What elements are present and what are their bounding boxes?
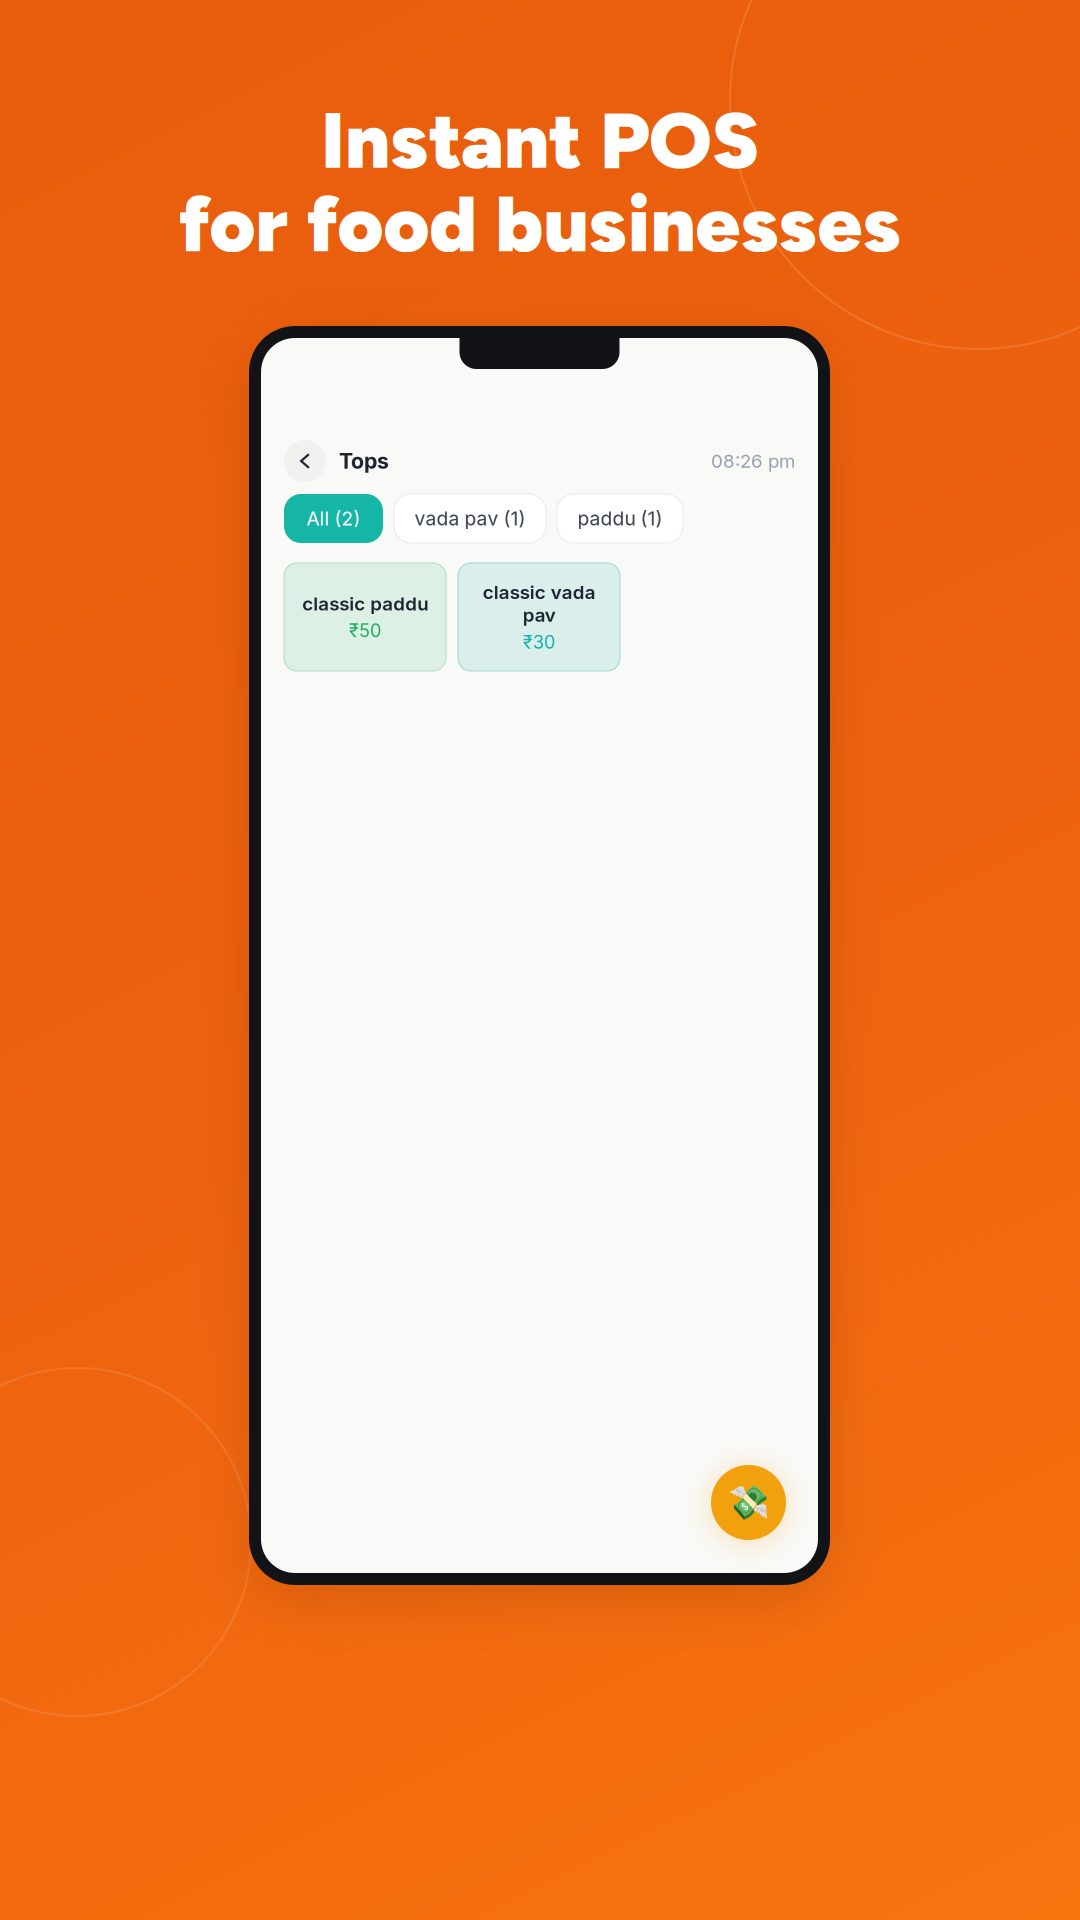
button[interactable]: Collect payment bbox=[711, 1465, 786, 1540]
staticText: Instant POS bbox=[321, 93, 759, 187]
staticText: ₹50 bbox=[349, 620, 381, 642]
staticText: for food businesses bbox=[178, 176, 901, 271]
staticText: paddu (1) bbox=[577, 507, 662, 530]
staticText: 💸 bbox=[727, 1483, 769, 1522]
staticText: classic vada pav bbox=[482, 581, 595, 626]
button[interactable]: All (2) bbox=[284, 494, 383, 543]
staticText: vada pav (1) bbox=[414, 507, 525, 530]
staticText: 08:26 pm bbox=[711, 450, 795, 472]
button[interactable]: vada pav (1) bbox=[394, 494, 546, 543]
staticText: All (2) bbox=[306, 507, 360, 530]
button[interactable]: classic paddu bbox=[284, 563, 446, 671]
staticText: classic paddu bbox=[302, 592, 428, 615]
staticText: Tops bbox=[339, 448, 389, 474]
button[interactable]: Back bbox=[284, 440, 326, 482]
staticText: ₹30 bbox=[523, 631, 555, 653]
button[interactable]: paddu (1) bbox=[557, 494, 683, 543]
button[interactable]: classic vada pav bbox=[458, 563, 620, 671]
